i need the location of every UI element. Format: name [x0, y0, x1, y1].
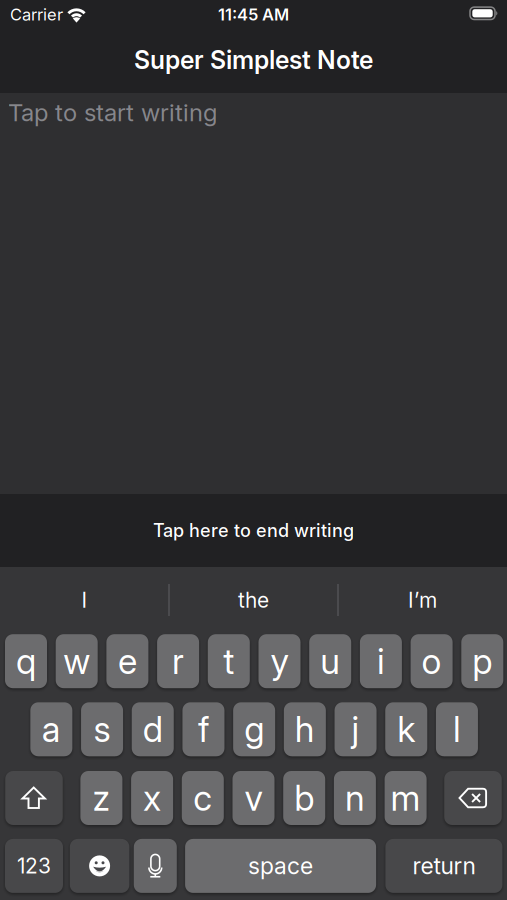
- staticText: x: [143, 777, 161, 819]
- staticText: p: [472, 640, 492, 682]
- button[interactable]: Numbers: [5, 839, 63, 893]
- staticText: u: [320, 640, 340, 682]
- button[interactable]: Delete: [444, 771, 502, 825]
- staticText: Carrier: [10, 4, 63, 24]
- button[interactable]: k: [385, 702, 427, 756]
- button[interactable]: w: [56, 634, 98, 688]
- staticText: a: [42, 708, 61, 750]
- staticText: h: [295, 708, 315, 750]
- button[interactable]: o: [411, 634, 453, 688]
- button[interactable]: e: [106, 634, 148, 688]
- button[interactable]: y: [258, 634, 300, 688]
- button[interactable]: x: [131, 771, 173, 825]
- button[interactable]: space: [185, 839, 376, 893]
- button[interactable]: z: [80, 771, 122, 825]
- staticText: l: [453, 708, 461, 750]
- button[interactable]: j: [335, 702, 377, 756]
- staticText: i: [377, 640, 385, 682]
- button[interactable]: n: [334, 771, 376, 825]
- button[interactable]: g: [233, 702, 275, 756]
- staticText: k: [397, 708, 415, 750]
- staticText: return: [412, 852, 475, 880]
- staticText: o: [422, 640, 442, 682]
- staticText: w: [63, 640, 90, 682]
- staticText: d: [143, 708, 163, 750]
- staticText: b: [294, 777, 314, 819]
- button[interactable]: Dictate: [134, 839, 177, 893]
- staticText: the: [238, 587, 269, 613]
- staticText: q: [16, 640, 36, 682]
- staticText: Tap to start writing: [8, 98, 217, 127]
- button[interactable]: f: [182, 702, 224, 756]
- button[interactable]: Shift: [5, 771, 63, 825]
- staticText: f: [198, 708, 209, 750]
- button[interactable]: r: [157, 634, 199, 688]
- staticText: m: [391, 777, 421, 819]
- staticText: space: [248, 852, 313, 880]
- staticText: e: [118, 640, 137, 682]
- button[interactable]: the: [169, 568, 337, 632]
- staticText: v: [244, 777, 262, 819]
- staticText: j: [352, 708, 360, 750]
- button[interactable]: b: [283, 771, 325, 825]
- button[interactable]: v: [232, 771, 274, 825]
- staticText: y: [270, 640, 288, 682]
- staticText: I’m: [408, 587, 437, 613]
- staticText: g: [244, 708, 264, 750]
- button[interactable]: l: [436, 702, 478, 756]
- button[interactable]: a: [30, 702, 72, 756]
- staticText: s: [94, 708, 111, 750]
- button[interactable]: p: [461, 634, 503, 688]
- button[interactable]: m: [385, 771, 427, 825]
- button[interactable]: h: [284, 702, 326, 756]
- staticText: c: [193, 777, 212, 819]
- button[interactable]: Emoji: [70, 839, 129, 893]
- button[interactable]: I: [0, 568, 168, 632]
- button[interactable]: c: [182, 771, 224, 825]
- button[interactable]: t: [208, 634, 250, 688]
- button[interactable]: u: [309, 634, 351, 688]
- button[interactable]: s: [81, 702, 123, 756]
- button[interactable]: I’m: [338, 568, 506, 632]
- staticText: Tap here to end writing: [153, 520, 354, 541]
- button[interactable]: q: [5, 634, 47, 688]
- staticText: r: [172, 640, 184, 682]
- staticText: n: [345, 777, 365, 819]
- staticText: t: [223, 640, 234, 682]
- staticText: Super Simplest Note: [134, 45, 373, 75]
- button[interactable]: i: [360, 634, 402, 688]
- staticText: 11:45 AM: [218, 4, 289, 24]
- button[interactable]: return: [385, 839, 502, 893]
- button[interactable]: d: [132, 702, 174, 756]
- staticText: 123: [17, 853, 51, 879]
- button[interactable]: Tap here to end writing: [0, 494, 507, 567]
- staticText: z: [92, 777, 110, 819]
- staticText: I: [81, 587, 87, 613]
